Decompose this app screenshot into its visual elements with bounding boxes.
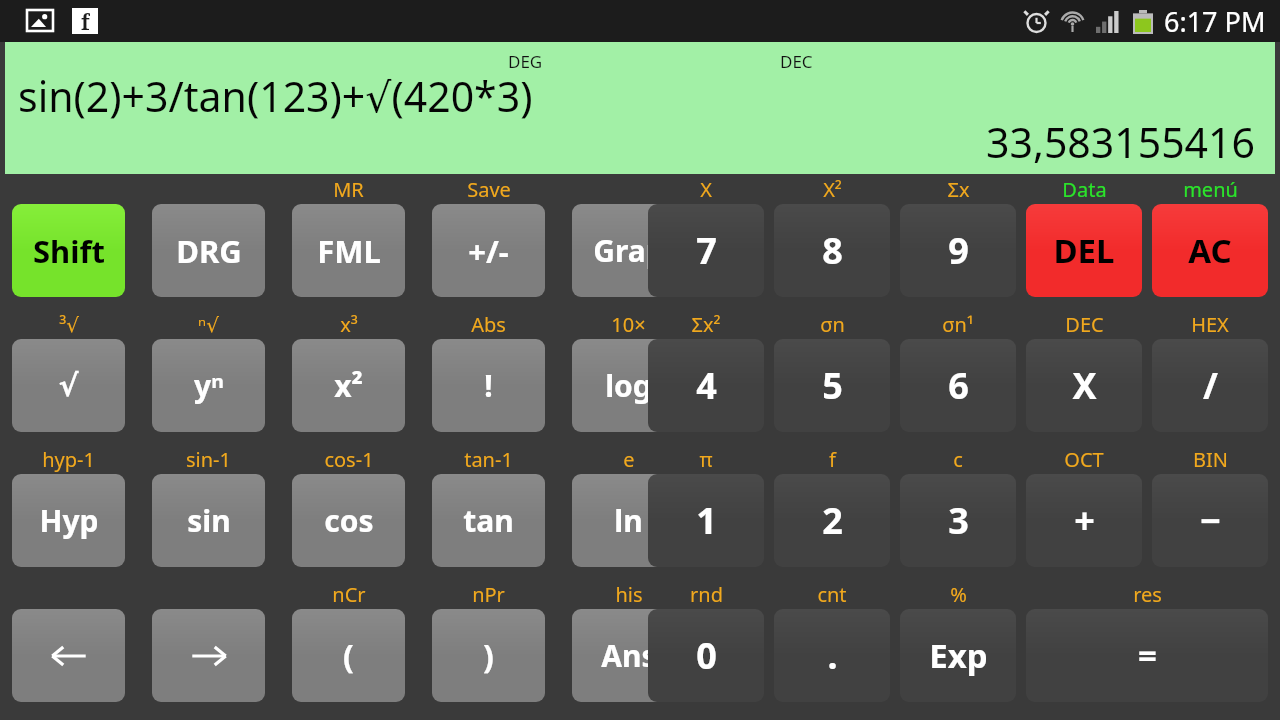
staticText: + [1074,496,1095,545]
button[interactable]: cos [292,474,405,567]
staticText: √ [58,368,79,403]
staticText: 8 [822,226,843,275]
button[interactable]: X [1026,339,1142,432]
staticText: sin [187,500,231,541]
staticText: e [623,446,635,473]
staticText: ) [483,634,494,678]
staticText: OCT [1064,446,1104,473]
staticText: Σx [947,176,970,203]
staticText: x² [334,365,363,406]
staticText: BIN [1193,446,1228,473]
button[interactable]: − [1152,474,1268,567]
button[interactable]: yⁿ [152,339,265,432]
button[interactable]: Shift [12,204,125,297]
button[interactable]: x² [292,339,405,432]
staticText: 5 [822,361,843,410]
staticText: 1 [696,496,717,545]
staticText: f [81,8,90,34]
staticText: cos-1 [324,446,374,473]
button[interactable]: +/- [432,204,545,297]
staticText: rnd [690,581,723,608]
button[interactable]: + [1026,474,1142,567]
staticText: cos [324,500,374,541]
button[interactable]: ) [432,609,545,702]
button[interactable]: ! [432,339,545,432]
staticText: x³ [340,311,358,338]
button[interactable]: DEL [1026,204,1142,297]
staticText: 33,583155416 [986,114,1255,170]
staticText: ! [484,365,493,406]
button[interactable]: 3 [900,474,1016,567]
staticText: 9 [948,226,969,275]
staticText: 6:17 PM [1164,3,1266,40]
staticText: σn¹ [942,311,974,338]
staticText: X [1072,361,1097,410]
button[interactable]: 0 [648,609,764,702]
staticText: tan [463,500,514,541]
staticText: 4 [696,361,717,410]
staticText: Ans [601,635,657,676]
staticText: Data [1062,176,1107,203]
staticText: X² [823,176,842,203]
staticText: 7 [696,226,717,275]
staticText: nCr [332,581,366,608]
button[interactable]: 5 [774,339,890,432]
staticText: 3 [948,496,969,545]
staticText: DEL [1053,228,1115,273]
staticText: ln [614,500,643,541]
staticText: . [827,631,838,680]
button[interactable]: . [774,609,890,702]
staticText: % [950,581,967,608]
button[interactable]: tan [432,474,545,567]
button[interactable]: / [1152,339,1268,432]
button[interactable]: 2 [774,474,890,567]
staticText: MR [333,176,364,203]
button[interactable]: sin [152,474,265,567]
button[interactable]: log [572,339,685,432]
button[interactable]: AC [1152,204,1268,297]
staticText: FML [317,230,381,272]
staticText: nPr [472,581,505,608]
staticText: his [615,581,643,608]
staticText: Exp [929,633,988,678]
button[interactable]: √ [12,339,125,432]
staticText: DRG [176,230,242,272]
staticText: DEG [508,50,543,73]
staticText: f [829,446,836,473]
staticText: menú [1183,176,1238,203]
staticText: π [699,446,713,473]
staticText: ⁿ√ [198,311,219,338]
staticText: 10× [611,311,646,338]
staticText: res [1133,581,1162,608]
staticText: sin-1 [186,446,231,473]
staticText: X [700,176,712,203]
button[interactable]: Grap [572,204,685,297]
button[interactable]: 4 [648,339,764,432]
button[interactable]: 7 [648,204,764,297]
button[interactable]: = [1026,609,1268,702]
staticText: 2 [822,496,843,545]
button[interactable]: Move cursor left [12,609,125,702]
button[interactable]: 9 [900,204,1016,297]
button[interactable]: 6 [900,339,1016,432]
staticText: = [1138,633,1157,678]
staticText: ( [343,634,354,678]
button[interactable]: FML [292,204,405,297]
button[interactable]: ( [292,609,405,702]
staticText: DEC [780,50,813,73]
button[interactable]: ln [572,474,685,567]
button[interactable]: Move cursor right [152,609,265,702]
button[interactable]: DRG [152,204,265,297]
button[interactable]: Ans [572,609,685,702]
button[interactable]: Exp [900,609,1016,702]
button[interactable]: 8 [774,204,890,297]
staticText: AC [1188,228,1232,273]
staticText: Save [467,176,511,203]
staticText: 6 [948,361,969,410]
staticText: cnt [817,581,847,608]
staticText: Shift [33,230,105,272]
staticText: c [953,446,963,473]
button[interactable]: Hyp [12,474,125,567]
staticText: hyp-1 [42,446,95,473]
button[interactable]: 1 [648,474,764,567]
